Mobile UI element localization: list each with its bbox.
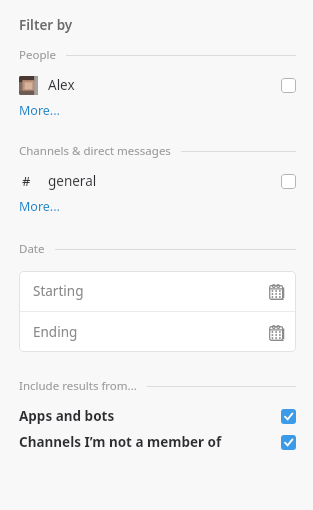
other: Pick a date — [268, 283, 285, 300]
staticText: Date — [19, 241, 45, 257]
staticText: Alex — [48, 76, 75, 94]
staticText: Include results from... — [19, 378, 137, 394]
staticText: Channels & direct messages — [19, 143, 171, 159]
staticText: # — [22, 172, 31, 190]
button[interactable]: Starting — [19, 271, 296, 311]
staticText: general — [48, 172, 97, 190]
button[interactable]: Toggle filter, checked — [281, 409, 296, 424]
staticText: Starting — [33, 282, 84, 300]
staticText: People — [19, 47, 56, 63]
button[interactable]: Alex — [0, 71, 313, 99]
button[interactable]: Toggle filter — [281, 174, 296, 189]
staticText: Channels I’m not a member of — [19, 433, 222, 451]
button[interactable]: Ending — [19, 312, 296, 352]
button[interactable]: # — [0, 167, 313, 195]
button[interactable]: Channels I’m not a member of — [0, 431, 313, 453]
staticText: Ending — [33, 323, 78, 341]
other: Pick a date — [268, 324, 285, 341]
button[interactable]: Apps and bots — [0, 405, 313, 427]
button[interactable]: Toggle filter, checked — [281, 435, 296, 450]
button[interactable]: Toggle filter — [281, 78, 296, 93]
button[interactable]: More... — [0, 195, 68, 217]
button[interactable]: More... — [0, 99, 68, 121]
staticText: More... — [19, 102, 60, 119]
staticText: More... — [19, 198, 60, 215]
staticText: Apps and bots — [19, 407, 115, 425]
staticText: Filter by — [19, 16, 73, 34]
